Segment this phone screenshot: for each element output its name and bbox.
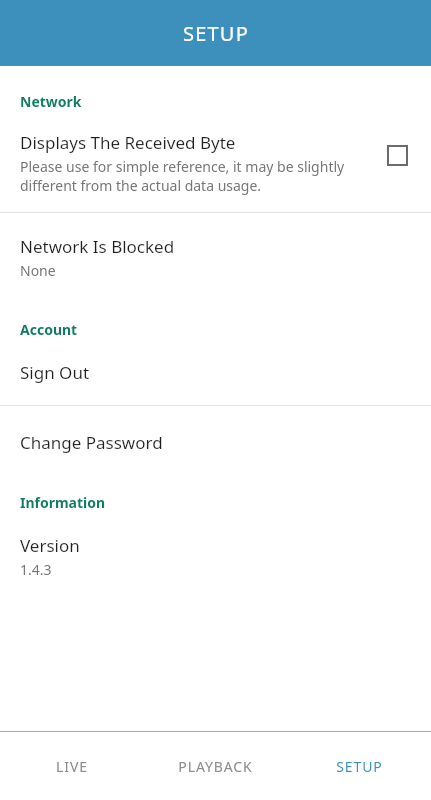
- staticText: Displays The Received Byte: [20, 131, 236, 154]
- staticText: Network: [20, 92, 82, 111]
- button[interactable]: Change Password: [0, 406, 431, 474]
- button[interactable]: Sign Out: [0, 361, 431, 405]
- staticText: LIVE: [56, 757, 88, 776]
- button[interactable]: LIVE: [0, 732, 143, 800]
- button[interactable]: PLAYBACK: [143, 732, 287, 800]
- button[interactable]: Displays the received byte, checkbox, un…: [381, 139, 413, 171]
- staticText: Version: [20, 534, 80, 557]
- button[interactable]: SETUP: [287, 732, 431, 800]
- staticText: None: [20, 261, 56, 280]
- button[interactable]: Displays The Received Byte: [0, 131, 431, 195]
- staticText: Please use for simple reference, it may …: [20, 157, 375, 195]
- staticText: Information: [20, 493, 106, 512]
- staticText: Network Is Blocked: [20, 235, 175, 258]
- staticText: Sign Out: [20, 361, 90, 384]
- staticText: Change Password: [20, 431, 163, 454]
- button[interactable]: Network Is Blocked: [0, 213, 431, 296]
- staticText: PLAYBACK: [178, 757, 253, 776]
- staticText: SETUP: [183, 20, 249, 47]
- staticText: Account: [20, 320, 78, 339]
- staticText: SETUP: [336, 757, 383, 776]
- staticText: 1.4.3: [20, 560, 52, 579]
